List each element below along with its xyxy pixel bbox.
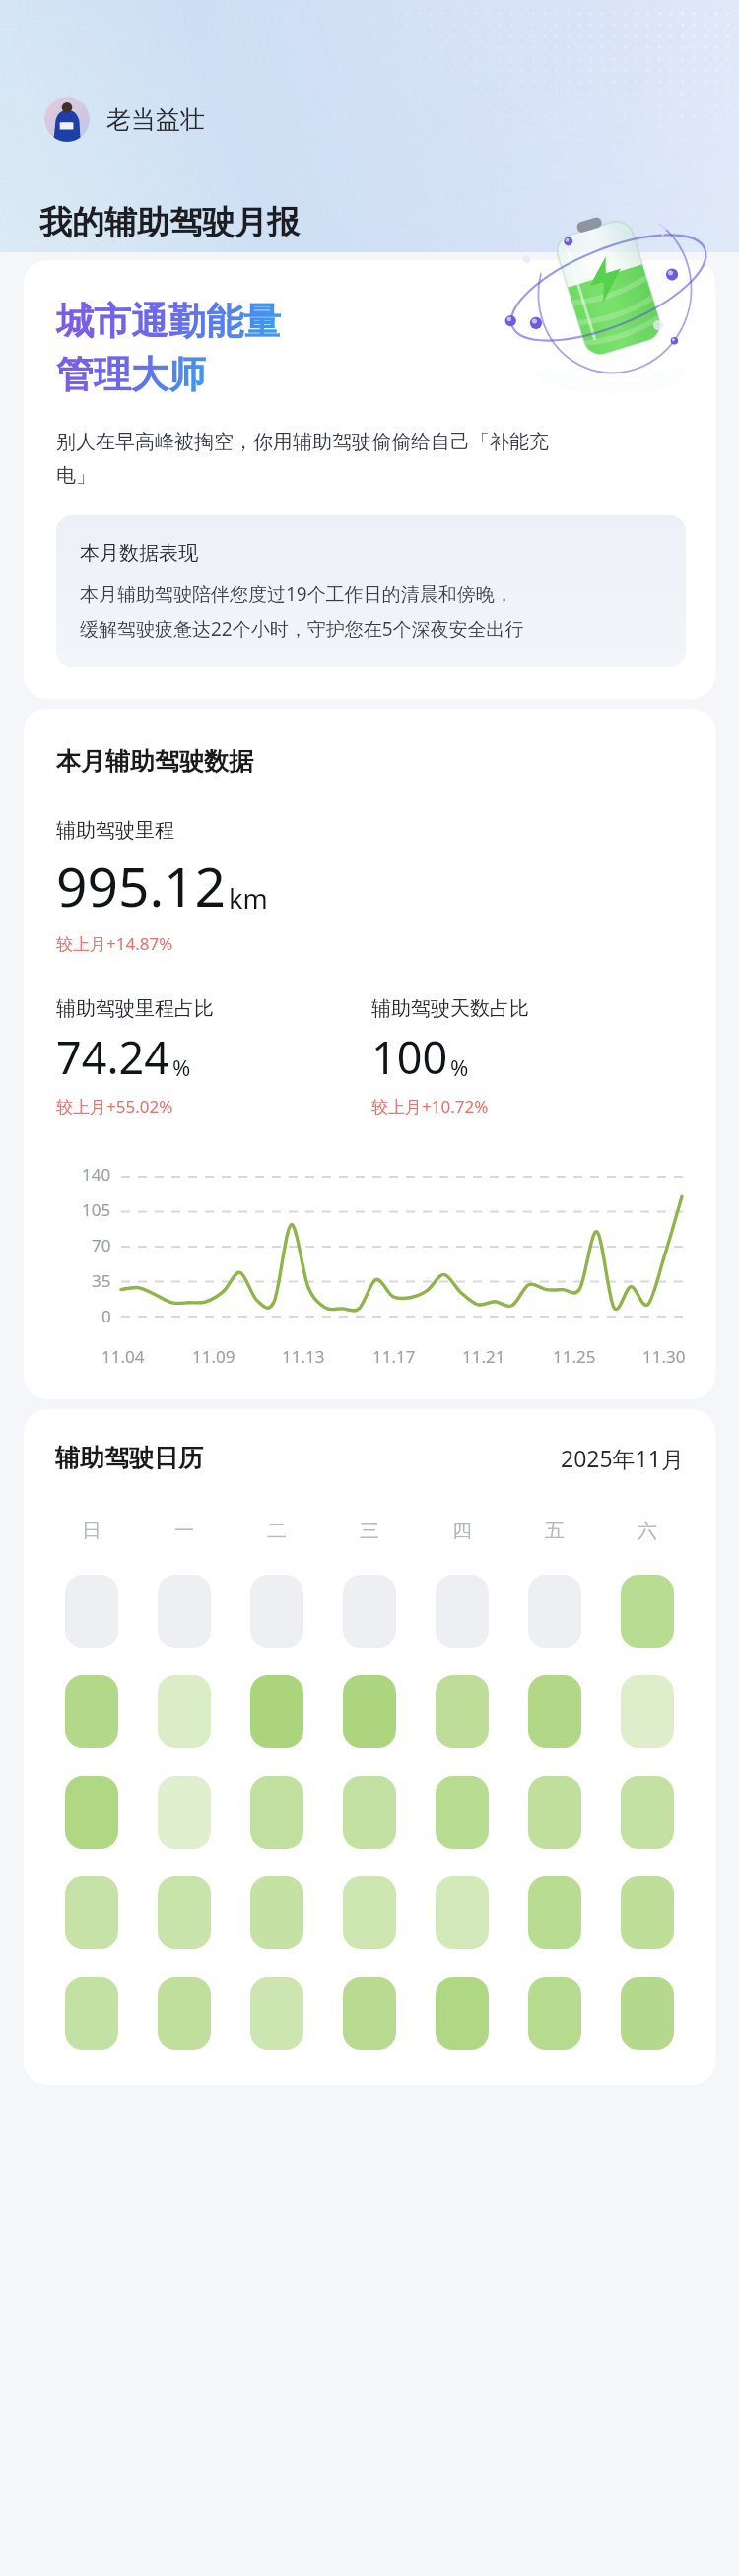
button[interactable] (65, 1876, 118, 1949)
button[interactable]: 辅助驾驶日历 (24, 1409, 715, 2085)
button[interactable] (528, 1675, 581, 1748)
button[interactable] (621, 1776, 674, 1849)
staticText: 较上月+10.72% (371, 1095, 489, 1118)
staticText: 11.13 (282, 1345, 325, 1368)
staticText: 我的辅助驾驶月报 (39, 202, 300, 243)
button[interactable] (528, 1876, 581, 1949)
staticText: 140 (82, 1163, 111, 1183)
button[interactable] (250, 1776, 303, 1849)
staticText: 辅助驾驶日历 (55, 1443, 203, 1473)
staticText: 100 (371, 1027, 448, 1087)
staticText: 74.24 (56, 1027, 170, 1087)
staticText: 较上月+14.87% (56, 932, 173, 955)
other: User avatar (44, 97, 90, 142)
staticText: 11.04 (101, 1345, 145, 1368)
button[interactable] (158, 1876, 211, 1949)
button[interactable] (65, 1776, 118, 1849)
button[interactable] (436, 1876, 489, 1949)
staticText: 四 (452, 1519, 472, 1543)
staticText: 995.12 (56, 848, 227, 922)
staticText: 2025年11月 (561, 1443, 684, 1473)
button[interactable] (343, 1977, 396, 2050)
button[interactable]: 本月辅助驾驶数据 (24, 709, 715, 1399)
button[interactable] (621, 1575, 674, 1648)
staticText: 二 (267, 1519, 287, 1543)
button[interactable] (621, 1876, 674, 1949)
staticText: km (229, 880, 268, 916)
button[interactable] (158, 1575, 211, 1648)
button[interactable] (436, 1776, 489, 1849)
staticText: 辅助驾驶里程占比 (56, 996, 214, 1021)
staticText: 70 (92, 1234, 111, 1254)
button[interactable] (621, 1675, 674, 1748)
button[interactable]: User avatar (44, 97, 205, 142)
button[interactable] (621, 1977, 674, 2050)
button[interactable] (436, 1675, 489, 1748)
button[interactable] (343, 1776, 396, 1849)
staticText: % (450, 1052, 469, 1082)
button[interactable] (343, 1675, 396, 1748)
button[interactable] (250, 1977, 303, 2050)
staticText: 一 (174, 1519, 194, 1543)
button[interactable] (65, 1977, 118, 2050)
button[interactable] (65, 1675, 118, 1748)
staticText: % (172, 1052, 191, 1082)
staticText: 0 (101, 1305, 111, 1324)
staticText: 11.21 (462, 1345, 505, 1368)
staticText: 11.17 (372, 1345, 416, 1368)
button[interactable] (250, 1876, 303, 1949)
staticText: 日 (82, 1519, 101, 1543)
button[interactable] (343, 1575, 396, 1648)
staticText: 别人在早高峰被掏空，你用辅助驾驶偷偷给自己「补能充 电」 (56, 430, 549, 488)
button[interactable] (528, 1977, 581, 2050)
staticText: 老当益壮 (106, 104, 205, 135)
staticText: 11.30 (642, 1345, 686, 1368)
staticText: 辅助驾驶里程 (56, 818, 174, 843)
button[interactable]: 城市通勤能量 (24, 260, 715, 699)
staticText: 五 (545, 1519, 565, 1543)
button[interactable] (158, 1675, 211, 1748)
button[interactable] (528, 1575, 581, 1648)
button[interactable] (436, 1977, 489, 2050)
staticText: 本月辅助驾驶陪伴您度过19个工作日的清晨和傍晚， 缓解驾驶疲惫达22个小时，守护… (80, 581, 524, 642)
button[interactable] (436, 1575, 489, 1648)
button[interactable] (250, 1575, 303, 1648)
staticText: 本月辅助驾驶数据 (56, 746, 253, 777)
staticText: 35 (92, 1269, 111, 1289)
staticText: 本月数据表现 (80, 541, 198, 566)
staticText: 三 (360, 1519, 379, 1543)
staticText: 管理大师 (56, 351, 206, 398)
button[interactable] (250, 1675, 303, 1748)
staticText: 11.25 (553, 1345, 596, 1368)
button[interactable] (158, 1977, 211, 2050)
staticText: 城市通勤能量 (56, 298, 281, 345)
button[interactable] (65, 1575, 118, 1648)
staticText: 较上月+55.02% (56, 1095, 173, 1118)
button[interactable] (343, 1876, 396, 1949)
staticText: 11.09 (192, 1345, 235, 1368)
staticText: 105 (82, 1198, 111, 1218)
button[interactable] (158, 1776, 211, 1849)
staticText: 辅助驾驶天数占比 (371, 996, 529, 1021)
button[interactable] (528, 1776, 581, 1849)
staticText: 六 (638, 1519, 657, 1543)
